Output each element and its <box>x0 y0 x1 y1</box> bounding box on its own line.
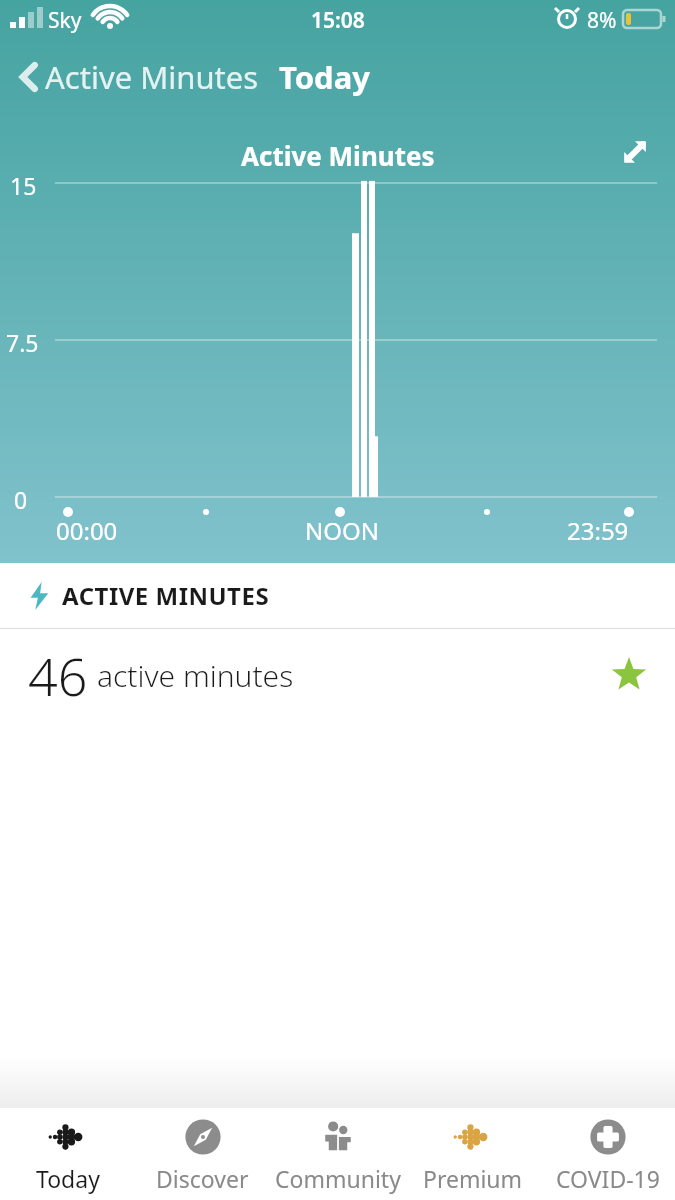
staticText: active minutes <box>97 655 294 696</box>
staticText: Today <box>279 56 370 98</box>
staticText: COVID-19 <box>556 1163 660 1194</box>
staticText: 15 <box>10 170 37 201</box>
staticText: Sky <box>48 6 82 35</box>
button[interactable]: Expand chart <box>611 128 659 176</box>
button[interactable]: ACTIVE MINUTES <box>0 563 675 628</box>
staticText: 0 <box>14 484 28 515</box>
button[interactable]: 46 <box>0 629 675 721</box>
staticText: 8% <box>587 6 617 35</box>
staticText: 46 <box>28 640 88 711</box>
button[interactable]: Today <box>0 1108 135 1200</box>
staticText: Active Minutes <box>45 56 259 98</box>
button[interactable]: COVID-19 <box>540 1108 675 1200</box>
button[interactable]: Discover <box>135 1108 270 1200</box>
staticText: ACTIVE MINUTES <box>62 579 270 612</box>
staticText: Community <box>275 1163 401 1194</box>
staticText: Discover <box>156 1163 249 1194</box>
staticText: Active Minutes <box>241 138 435 173</box>
button[interactable]: Community <box>270 1108 405 1200</box>
staticText: 23:59 <box>567 514 629 547</box>
staticText: 7.5 <box>6 327 39 358</box>
staticText: Today <box>36 1163 100 1194</box>
staticText: Premium <box>423 1163 523 1194</box>
staticText: NOON <box>305 514 379 547</box>
button[interactable]: Active Minutes <box>12 52 263 102</box>
staticText: 15:08 <box>311 6 365 35</box>
staticText: 00:00 <box>56 514 118 547</box>
button[interactable]: Premium <box>405 1108 540 1200</box>
